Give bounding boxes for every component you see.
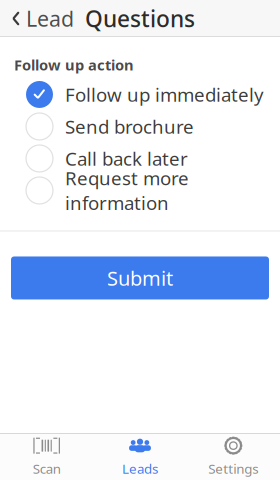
button[interactable]: Scan: [0, 433, 93, 480]
staticText: Follow up action: [14, 55, 134, 74]
button[interactable]: Lead: [0, 0, 74, 39]
staticText: Follow up immediately: [65, 82, 264, 107]
button[interactable]: Submit: [11, 256, 269, 299]
staticText: Lead: [26, 4, 74, 33]
button[interactable]: Request more information: [0, 174, 280, 206]
staticText: Questions: [85, 3, 195, 33]
button[interactable]: Call back later: [0, 142, 280, 174]
staticText: Leads: [122, 460, 158, 477]
button[interactable]: Leads: [93, 433, 187, 480]
staticText: Submit: [107, 265, 173, 291]
staticText: Scan: [33, 460, 61, 477]
staticText: Request more information: [65, 166, 189, 215]
staticText: Send brochure: [65, 114, 194, 139]
staticText: Settings: [208, 460, 258, 477]
button[interactable]: Settings: [187, 433, 280, 480]
staticText: Call back later: [65, 146, 188, 171]
button[interactable]: Follow up immediately: [0, 78, 280, 110]
button[interactable]: Send brochure: [0, 110, 280, 142]
